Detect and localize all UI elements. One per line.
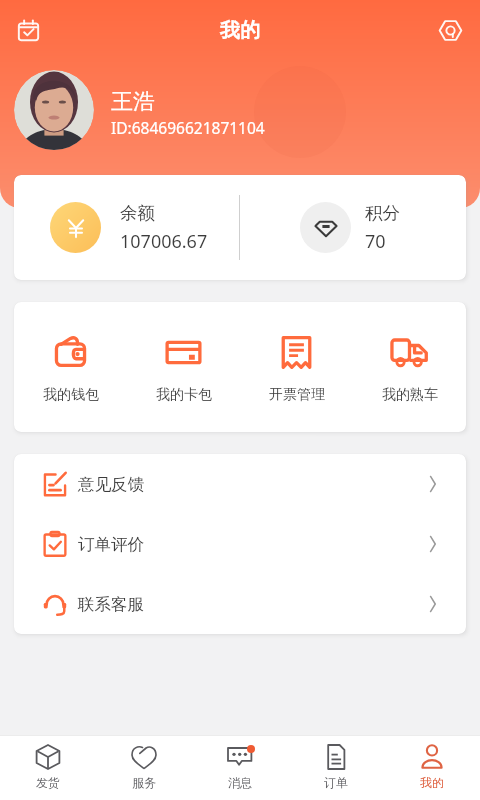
button[interactable]: 我的卡包: [127, 302, 240, 432]
staticText: 我的卡包: [156, 386, 212, 404]
button[interactable]: 服务: [96, 736, 192, 800]
staticText: 我的: [220, 18, 260, 43]
button[interactable]: 发货: [0, 736, 96, 800]
staticText: 订单评价: [78, 534, 144, 555]
button[interactable]: 开票管理: [240, 302, 353, 432]
staticText: 意见反馈: [78, 474, 144, 495]
staticText: 余额: [120, 202, 155, 224]
staticText: 消息: [228, 775, 252, 790]
staticText: 我的熟车: [382, 386, 438, 404]
button[interactable]: 王浩: [14, 70, 265, 150]
staticText: 联系客服: [78, 594, 144, 615]
button[interactable]: 消息: [192, 736, 288, 800]
button[interactable]: 我的熟车: [353, 302, 466, 432]
button[interactable]: 积分: [240, 175, 466, 280]
button[interactable]: 余额: [14, 175, 239, 280]
staticText: 订单: [324, 775, 348, 790]
staticText: 发货: [36, 775, 60, 790]
staticText: 王浩: [111, 88, 155, 116]
button[interactable]: 联系客服: [14, 574, 466, 634]
button[interactable]: 订单评价: [14, 514, 466, 574]
button[interactable]: 我的钱包: [14, 302, 127, 432]
staticText: 我的: [420, 775, 444, 790]
button[interactable]: Settings: [429, 9, 471, 51]
button[interactable]: Tasks: [7, 9, 49, 51]
staticText: 107006.67: [120, 229, 208, 254]
staticText: 70: [365, 229, 386, 254]
button[interactable]: 意见反馈: [14, 454, 466, 514]
staticText: ID:684696621871104: [111, 117, 265, 138]
button[interactable]: 订单: [288, 736, 384, 800]
staticText: 开票管理: [269, 386, 325, 404]
staticText: 我的钱包: [43, 386, 99, 404]
button[interactable]: 我的: [384, 736, 480, 800]
staticText: 服务: [132, 775, 156, 790]
staticText: 积分: [365, 202, 400, 224]
